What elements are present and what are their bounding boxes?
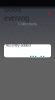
button[interactable]: Good evening [4, 5, 29, 22]
staticText: Good evening [4, 5, 29, 22]
staticText: Collections [18, 21, 37, 26]
staticText: Recently added [5, 42, 30, 48]
button[interactable]: Profile [48, 12, 51, 15]
